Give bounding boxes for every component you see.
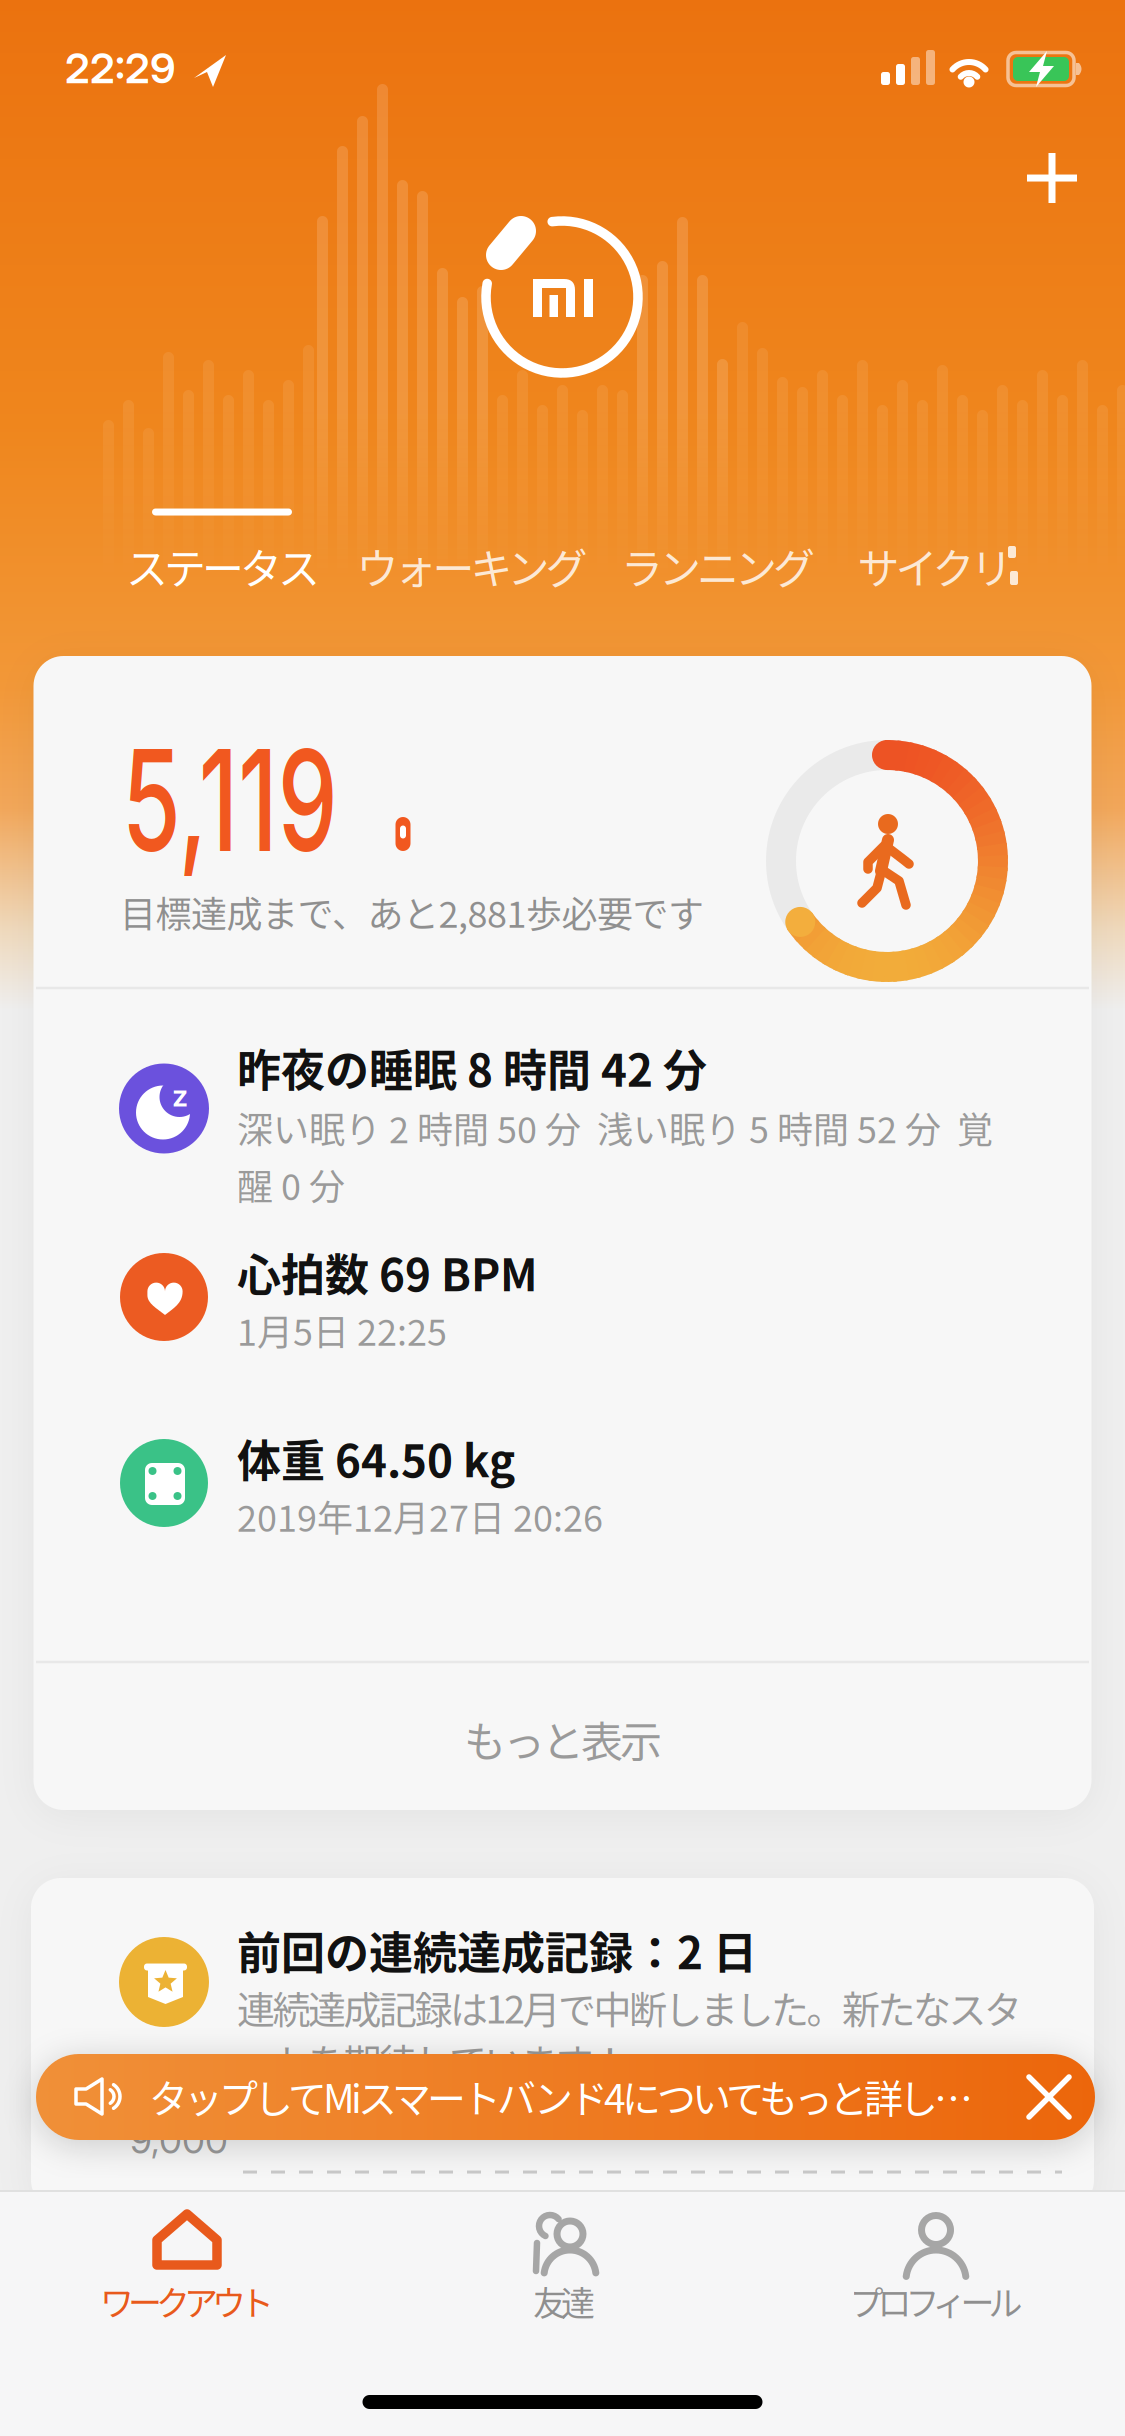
staticText: 1月5日 22:25 bbox=[237, 1304, 447, 1356]
staticText: 目標達成まで、あと2,881歩必要です bbox=[120, 886, 704, 938]
button[interactable]: ランニング bbox=[621, 536, 815, 596]
button[interactable]: サイクリ bbox=[857, 536, 1012, 596]
staticText: ステータス bbox=[126, 536, 320, 596]
staticText: もっと表示 bbox=[464, 1709, 662, 1769]
button[interactable]: 友達 bbox=[394, 2196, 734, 2326]
button[interactable]: 5,119 bbox=[36, 660, 1090, 990]
staticText: ートを期待しています！ bbox=[237, 2032, 629, 2087]
button[interactable]: 前回の連続達成記録：2 日 bbox=[31, 1878, 1094, 2210]
staticText: 昨夜の睡眠 8 時間 42 分 bbox=[237, 1036, 707, 1099]
staticText: 22:29 bbox=[65, 43, 175, 93]
staticText: z bbox=[172, 1077, 188, 1114]
button[interactable]: ウォーキング bbox=[356, 536, 587, 596]
button[interactable]: プロフィール bbox=[766, 2196, 1106, 2326]
staticText: 9,000 bbox=[130, 2118, 228, 2162]
staticText: 深い眠り 2 時間 50 分 浅い眠り 5 時間 52 分 覚 bbox=[237, 1101, 993, 1153]
staticText: プロフィール bbox=[849, 2276, 1022, 2326]
button[interactable]: タップしてMiスマートバンド4についてもっと詳し… bbox=[36, 2054, 1095, 2140]
staticText: ウォーキング bbox=[356, 536, 587, 596]
button[interactable]: 心拍数 69 BPM bbox=[36, 1240, 1090, 1360]
staticText: 体重 64.50 kg bbox=[237, 1426, 515, 1490]
staticText: 2019年12月27日 20:26 bbox=[237, 1490, 603, 1542]
staticText: 心拍数 69 BPM bbox=[237, 1240, 538, 1304]
staticText: 前回の連続達成記録：2 日 bbox=[237, 1918, 757, 1982]
staticText: ランニング bbox=[621, 536, 815, 596]
button[interactable]: ステータス bbox=[126, 536, 320, 596]
button[interactable]: 体重 64.50 kg bbox=[36, 1426, 1090, 1546]
button[interactable]: ワークアウト bbox=[17, 2196, 357, 2326]
button[interactable]: z bbox=[36, 1029, 1090, 1214]
staticText: ワークアウト bbox=[100, 2276, 274, 2326]
staticText: タップしてMiスマートバンド4についてもっと詳し… bbox=[149, 2068, 973, 2124]
button[interactable]: Add bbox=[1012, 138, 1092, 218]
staticText: 5,119 bbox=[122, 715, 439, 885]
button[interactable]: Close bbox=[1009, 2057, 1089, 2137]
button[interactable]: もっと表示 bbox=[36, 1664, 1090, 1810]
staticText: 友達 bbox=[533, 2276, 595, 2326]
staticText: 連続達成記録は12月で中断しました。新たなスタ bbox=[237, 1979, 1022, 2034]
staticText: サイクリ bbox=[857, 536, 1012, 596]
staticText: 醒 0 分 bbox=[237, 1158, 345, 1210]
